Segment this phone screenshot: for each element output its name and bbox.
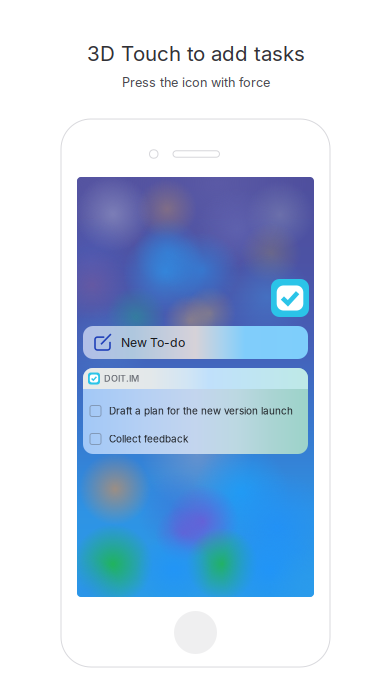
staticText: DOIT.IM [104,373,139,384]
staticText: Draft a plan for the new version launch [109,405,293,417]
staticText: New To-do [121,335,185,350]
button[interactable]: Draft a plan for the new version launch [83,397,308,425]
button[interactable]: New To-do [83,326,308,359]
staticText: Press the icon with force [122,75,270,90]
staticText: Collect feedback [109,433,188,445]
staticText: 3D Touch to add tasks [87,41,305,66]
button[interactable]: Collect feedback [83,425,308,453]
